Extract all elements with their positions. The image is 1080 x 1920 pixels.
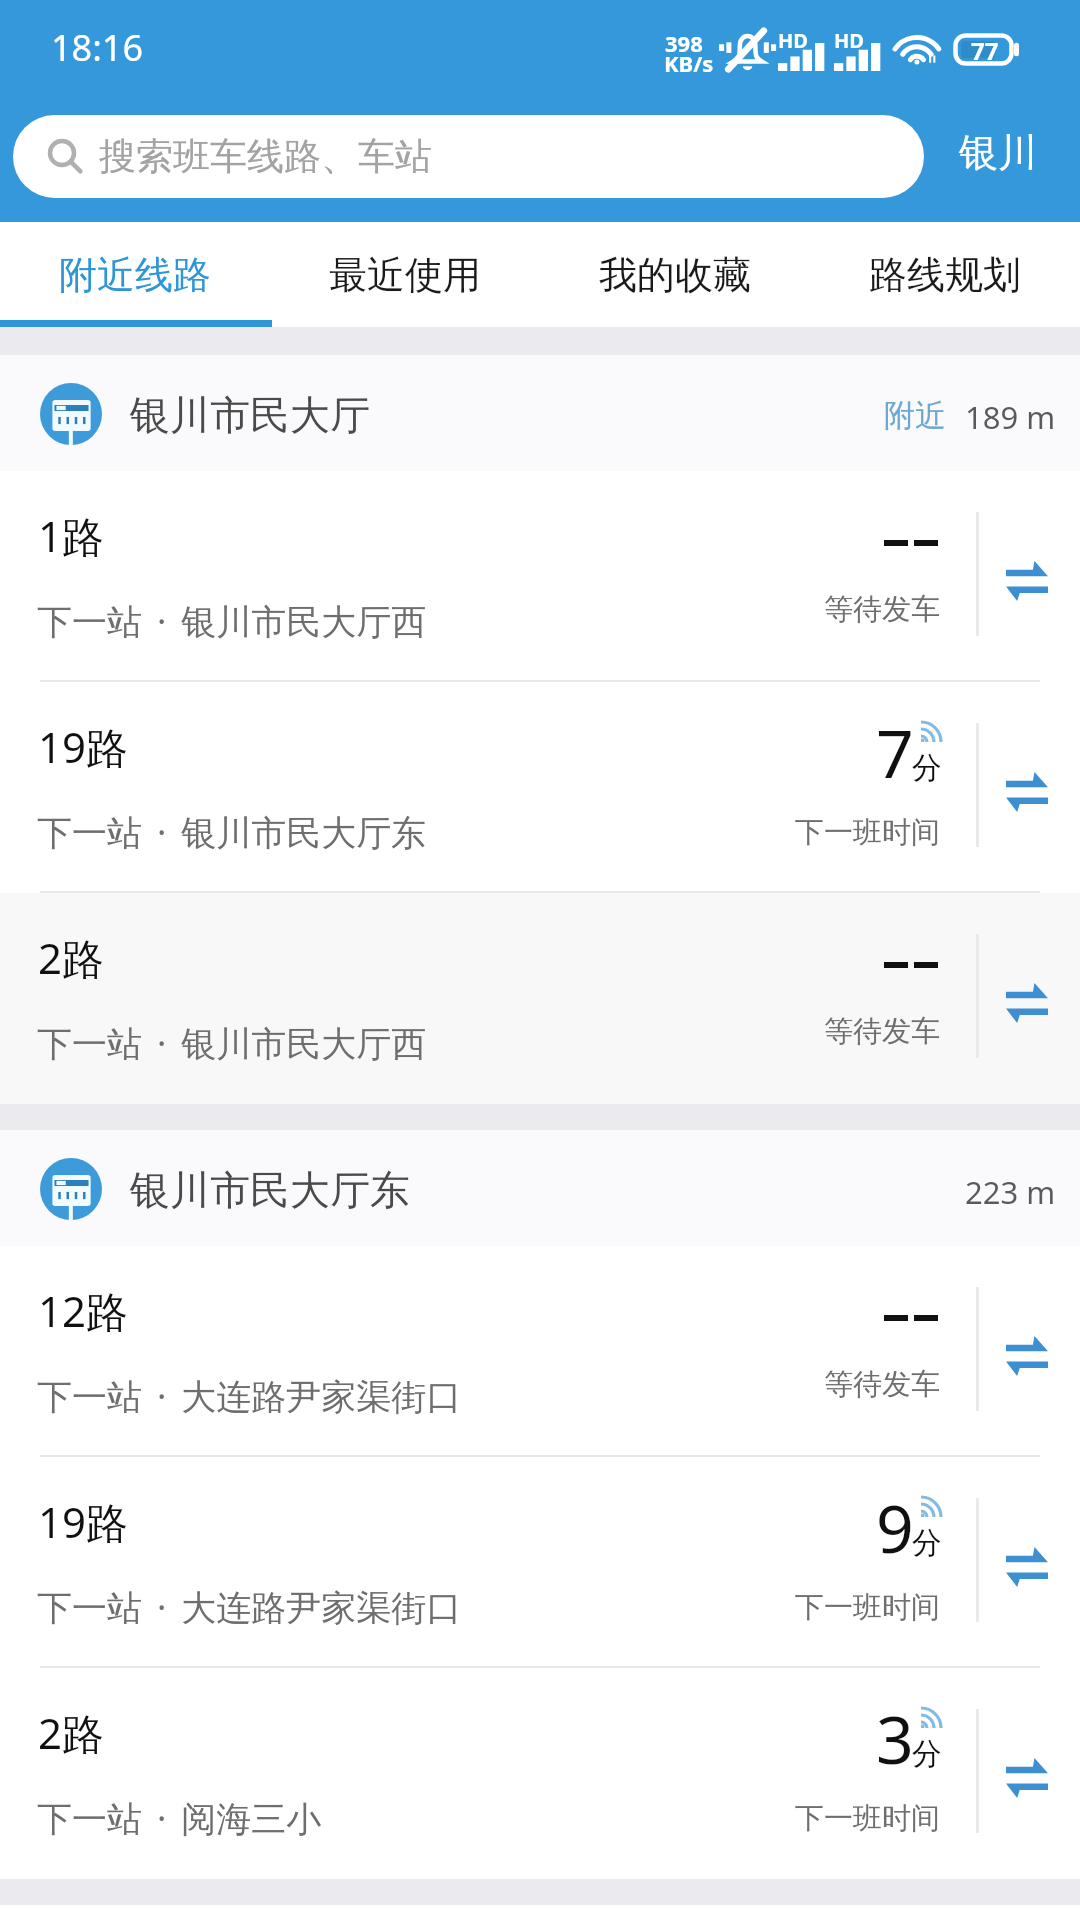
staticText: 下一班时间 xyxy=(795,814,940,851)
button[interactable]: 切换方向 xyxy=(991,1320,1063,1392)
staticText: 等待发车 xyxy=(824,1013,940,1050)
staticText: 3 xyxy=(876,1693,914,1783)
button[interactable]: 2路 xyxy=(0,1668,1080,1879)
staticText: 2路 xyxy=(38,929,105,986)
staticText: 我的收藏 xyxy=(599,251,751,299)
button[interactable]: 附近线路 xyxy=(0,222,270,327)
button[interactable]: 1路 xyxy=(0,471,1080,682)
button[interactable]: 切换方向 xyxy=(991,545,1063,617)
button[interactable]: 12路 xyxy=(0,1246,1080,1457)
staticText: HD xyxy=(778,27,808,54)
button[interactable]: 切换方向 xyxy=(991,967,1063,1039)
staticText: 7 xyxy=(876,707,914,797)
staticText: 19路 xyxy=(38,1493,129,1550)
staticText: 223 m xyxy=(965,1171,1056,1213)
staticText: 路线规划 xyxy=(869,251,1021,299)
button[interactable]: 切换方向 xyxy=(991,1531,1063,1603)
staticText: 下一站 · 银川市民大厅西 xyxy=(37,1019,427,1067)
staticText: 下一班时间 xyxy=(795,1800,940,1837)
staticText: HD xyxy=(834,27,864,54)
button[interactable]: 我的收藏 xyxy=(540,222,810,327)
staticText: 下一站 · 银川市民大厅西 xyxy=(37,597,427,645)
staticText: 银川 xyxy=(959,128,1037,177)
button[interactable]: 19路 xyxy=(0,682,1080,893)
staticText: 9 xyxy=(876,1482,914,1572)
staticText: 下一班时间 xyxy=(795,1589,940,1626)
staticText: 分 xyxy=(912,749,942,787)
staticText: 分 xyxy=(912,1735,942,1773)
staticText: 等待发车 xyxy=(824,591,940,628)
staticText: 下一站 · 大连路尹家渠街口 xyxy=(37,1583,462,1631)
button[interactable]: 路线规划 xyxy=(810,222,1080,327)
staticText: 18:16 xyxy=(51,23,144,72)
staticText: 下一站 · 大连路尹家渠街口 xyxy=(37,1372,462,1420)
button[interactable]: 银川 xyxy=(959,128,1037,177)
button[interactable]: 最近使用 xyxy=(270,222,540,327)
staticText: 19路 xyxy=(38,718,129,775)
button[interactable]: 银川市民大厅东 xyxy=(0,1130,1080,1246)
staticText: 银川市民大厅 xyxy=(130,390,370,440)
staticText: 等待发车 xyxy=(824,1366,940,1403)
staticText: 12路 xyxy=(38,1282,129,1339)
staticText: 搜索班车线路、车站 xyxy=(99,133,432,180)
staticText: 分 xyxy=(912,1524,942,1562)
button[interactable]: 搜索班车线路、车站 xyxy=(13,115,924,198)
staticText: 1路 xyxy=(38,507,105,564)
staticText: 附近 xyxy=(884,396,946,435)
staticText: 189 m xyxy=(965,396,1056,438)
staticText: 下一站 · 阅海三小 xyxy=(37,1794,322,1842)
staticText: 最近使用 xyxy=(329,251,481,299)
staticText: 银川市民大厅东 xyxy=(130,1165,410,1215)
staticText: KB/s xyxy=(664,48,714,78)
staticText: 77 xyxy=(971,34,999,65)
staticText: 2路 xyxy=(38,1704,105,1761)
staticText: 附近线路 xyxy=(59,251,211,299)
button[interactable]: 19路 xyxy=(0,1457,1080,1668)
button[interactable]: 切换方向 xyxy=(991,756,1063,828)
button[interactable]: 2路 xyxy=(0,893,1080,1104)
staticText: 下一站 · 银川市民大厅东 xyxy=(37,808,427,856)
button[interactable]: 银川市民大厅 xyxy=(0,355,1080,471)
button[interactable]: 切换方向 xyxy=(991,1742,1063,1814)
staticText: 398 xyxy=(665,28,703,58)
